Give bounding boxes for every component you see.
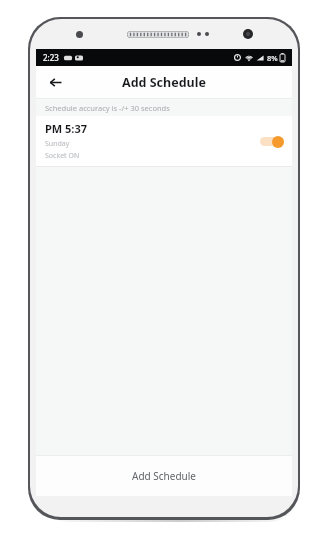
staticText: Schedule accuracy is -/+ 30 seconds bbox=[45, 103, 170, 113]
staticText: Add Schedule bbox=[122, 74, 206, 91]
button[interactable]: Schedule enabled toggle bbox=[260, 135, 284, 148]
staticText: 2:23 bbox=[43, 52, 59, 63]
staticText: Sunday bbox=[45, 139, 70, 149]
staticText: Add Schedule bbox=[132, 469, 196, 483]
button[interactable]: PM 5:37 bbox=[36, 116, 292, 166]
staticText: PM 5:37 bbox=[45, 121, 88, 136]
button[interactable]: Back bbox=[42, 69, 68, 95]
button[interactable]: Add Schedule bbox=[36, 456, 292, 496]
staticText: 8% bbox=[267, 53, 278, 63]
staticText: Socket ON bbox=[45, 151, 80, 161]
